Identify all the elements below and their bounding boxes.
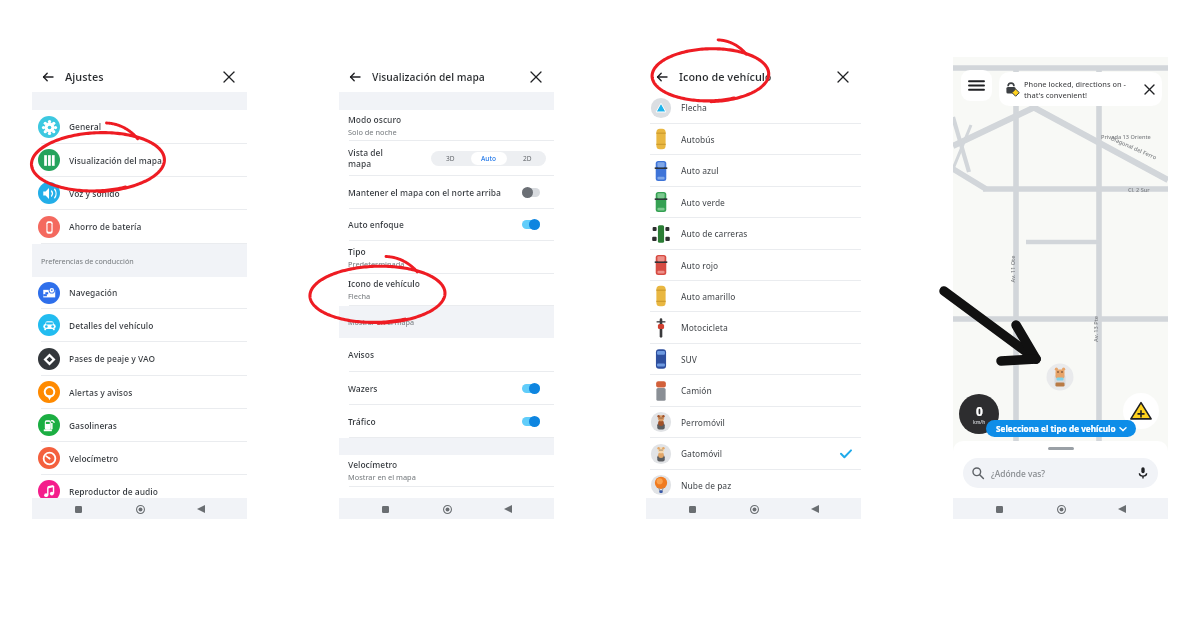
button[interactable]: Recents — [70, 501, 86, 517]
button[interactable]: Ahorro de batería — [32, 210, 247, 243]
staticText: Privada 13 Oriente — [1101, 133, 1151, 141]
button[interactable]: Reproductor de audio — [32, 475, 247, 507]
staticText: Avisos — [348, 349, 375, 360]
staticText: General — [69, 121, 102, 132]
button[interactable]: Back — [500, 501, 516, 517]
button[interactable]: Home — [746, 501, 762, 517]
staticText: Solo de noche — [348, 127, 397, 137]
staticText: 0 — [976, 403, 983, 419]
button[interactable]: Back — [1114, 501, 1130, 517]
button[interactable]: Auto verde — [646, 187, 861, 217]
button[interactable]: Mantener el mapa con el norte arriba — [339, 176, 554, 208]
staticText: Auto rojo — [681, 260, 851, 271]
button[interactable]: Home — [439, 501, 455, 517]
staticText: Camión — [681, 385, 851, 396]
staticText: Vista del — [348, 147, 383, 158]
button[interactable]: Auto — [471, 152, 507, 165]
staticText: Auto amarillo — [681, 291, 851, 302]
staticText: 3D — [446, 154, 455, 163]
staticText: Mostrar en el mapa — [348, 472, 416, 482]
button[interactable]: Phone locked, directions on - — [999, 72, 1162, 106]
button[interactable]: Gatomóvil — [646, 438, 861, 469]
button[interactable]: Wazers — [339, 372, 554, 404]
staticText: that's convenient! — [1024, 90, 1087, 100]
staticText: Auto verde — [681, 197, 851, 208]
button[interactable]: Visualización del mapa — [32, 144, 247, 176]
staticText: Tráfico — [348, 416, 516, 427]
staticText: Mantener el mapa con el norte arriba — [348, 187, 516, 198]
button[interactable]: Speed — [959, 394, 999, 434]
staticText: Modo oscuro — [348, 114, 402, 125]
staticText: Auto azul — [681, 165, 851, 176]
staticText: mapa — [348, 158, 372, 169]
button[interactable]: Close — [219, 67, 238, 86]
button[interactable]: Auto enfoque — [339, 209, 554, 240]
staticText: Perromóvil — [681, 417, 851, 428]
button[interactable]: Recents — [684, 501, 700, 517]
button[interactable]: Back — [38, 67, 57, 86]
staticText: Velocímetro — [348, 459, 398, 470]
button[interactable]: Vista del — [339, 141, 554, 175]
button[interactable]: Motocicleta — [646, 312, 861, 343]
staticText: Reproductor de audio — [69, 486, 158, 497]
button[interactable]: Flecha — [646, 92, 861, 123]
staticText: SUV — [681, 354, 851, 365]
button[interactable]: Tipo — [339, 241, 554, 273]
staticText: Navegación — [69, 287, 118, 298]
button[interactable]: Tráfico — [339, 405, 554, 437]
staticText: Mostrar en el mapa — [348, 317, 414, 327]
button[interactable]: Report — [1123, 393, 1159, 429]
button[interactable]: 3D — [431, 151, 470, 166]
button[interactable]: Auto azul — [646, 155, 861, 186]
staticText: km/h — [973, 419, 986, 426]
button[interactable]: Avisos — [339, 338, 554, 371]
button[interactable]: Auto de carreras — [646, 218, 861, 249]
staticText: Ajustes — [65, 69, 104, 84]
button[interactable]: 2D — [508, 151, 546, 166]
button[interactable]: Recents — [991, 501, 1007, 517]
button[interactable]: Velocímetro — [32, 442, 247, 474]
button[interactable]: Detalles del vehículo — [32, 309, 247, 341]
staticText: Autobús — [681, 134, 851, 145]
button[interactable]: Close — [833, 67, 852, 86]
button[interactable]: Autobús — [646, 124, 861, 154]
button[interactable]: Back — [652, 67, 671, 86]
button[interactable]: Modo oscuro — [339, 110, 554, 140]
button[interactable]: Auto rojo — [646, 250, 861, 280]
button[interactable]: Pases de peaje y VAO — [32, 342, 247, 375]
button[interactable]: General — [32, 110, 247, 143]
button[interactable]: Selecciona el tipo de vehículo — [986, 420, 1136, 437]
button[interactable]: Camión — [646, 375, 861, 406]
button[interactable]: Voz y sonido — [32, 177, 247, 209]
staticText: Pases de peaje y VAO — [69, 353, 156, 364]
button[interactable]: Alertas y avisos — [32, 376, 247, 408]
staticText: Av. 11 Ote — [1008, 255, 1016, 282]
button[interactable]: Menu — [961, 70, 992, 101]
button[interactable]: ¿Adónde vas? — [963, 458, 1158, 488]
button[interactable]: Velocímetro — [339, 455, 554, 486]
staticText: Flecha — [348, 291, 371, 301]
staticText: Tipo — [348, 246, 366, 257]
button[interactable]: Nube de paz — [646, 470, 861, 500]
staticText: 2D — [523, 154, 532, 163]
button[interactable]: Back — [193, 501, 209, 517]
button[interactable]: Icono de vehículo — [339, 274, 554, 305]
staticText: Gatomóvil — [681, 448, 841, 459]
button[interactable]: Recents — [377, 501, 393, 517]
button[interactable]: Close — [526, 67, 545, 86]
staticText: Nube de paz — [681, 480, 851, 491]
button[interactable]: Back — [345, 67, 364, 86]
button[interactable]: Auto amarillo — [646, 281, 861, 311]
button[interactable]: SUV — [646, 344, 861, 374]
staticText: Visualización del mapa — [372, 70, 485, 84]
button[interactable]: Navegación — [32, 277, 247, 308]
staticText: Av. 13 Pte — [1092, 316, 1100, 342]
button[interactable]: Home — [1053, 501, 1069, 517]
staticText: Diagonal del Ferro — [1109, 134, 1158, 162]
button[interactable]: Perromóvil — [646, 407, 861, 437]
staticText: Flecha — [681, 102, 851, 113]
button[interactable]: Dismiss — [1142, 82, 1157, 97]
button[interactable]: Back — [807, 501, 823, 517]
button[interactable]: Home — [132, 501, 148, 517]
button[interactable]: Gasolineras — [32, 409, 247, 441]
